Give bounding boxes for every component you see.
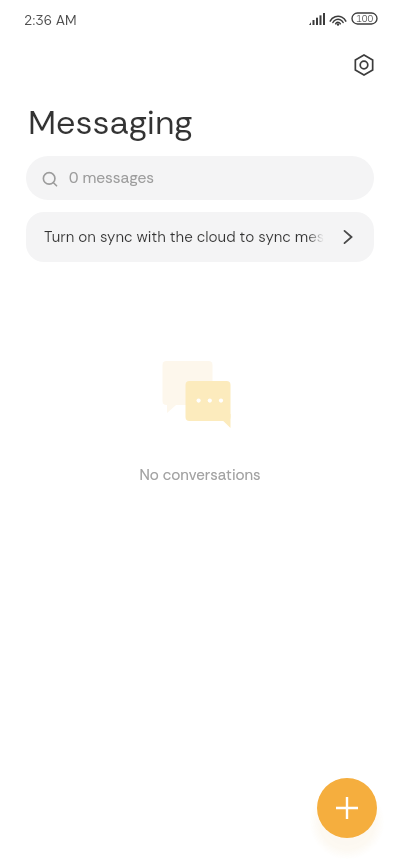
- staticText: Turn on sync with the cloud to sync mess…: [44, 227, 324, 247]
- button[interactable]: Turn on sync with the cloud to sync mess…: [26, 212, 374, 262]
- staticText: 0 messages: [69, 168, 155, 188]
- staticText: No conversations: [0, 465, 400, 485]
- staticText: Messaging: [28, 100, 193, 144]
- button[interactable]: New conversation: [317, 778, 377, 838]
- button[interactable]: Settings: [349, 50, 378, 79]
- button[interactable]: 0 messages: [26, 156, 374, 200]
- staticText: 100: [356, 13, 374, 24]
- staticText: 2:36 AM: [24, 11, 77, 29]
